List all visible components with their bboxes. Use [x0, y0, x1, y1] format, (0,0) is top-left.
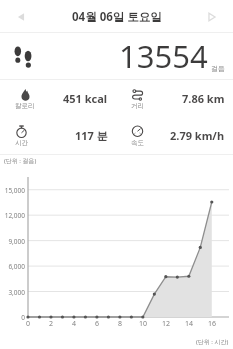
- staticText: 8: [114, 319, 126, 329]
- button[interactable]: 시간: [0, 117, 116, 154]
- button[interactable]: Previous day: [8, 4, 34, 30]
- staticText: 시간: [15, 139, 28, 147]
- staticText: 15,000: [0, 186, 25, 195]
- staticText: (단위 : 시간): [196, 338, 229, 346]
- staticText: 14: [183, 319, 195, 329]
- staticText: 13554: [119, 35, 208, 77]
- other: Steps: [13, 43, 39, 69]
- staticText: 04월 06일 토요일: [72, 9, 162, 25]
- staticText: 10: [137, 319, 149, 329]
- staticText: 451 kcal: [63, 91, 108, 106]
- staticText: 7.86 km: [182, 91, 225, 106]
- button[interactable]: 거리: [116, 80, 233, 117]
- staticText: 2: [45, 319, 57, 329]
- staticText: 속도: [131, 139, 144, 147]
- staticText: (단위 : 걸음): [4, 157, 37, 165]
- staticText: 16: [206, 319, 218, 329]
- staticText: 0: [0, 313, 25, 322]
- button[interactable]: Steps: [0, 33, 233, 79]
- staticText: 12,000: [0, 211, 25, 220]
- staticText: 칼로리: [15, 102, 35, 110]
- staticText: 걸음: [211, 64, 225, 73]
- button[interactable]: 속도: [116, 117, 233, 154]
- button[interactable]: 칼로리: [0, 80, 116, 117]
- button[interactable]: Next day: [199, 4, 225, 30]
- staticText: 0: [22, 319, 34, 329]
- staticText: 2.79 km/h: [170, 128, 225, 143]
- staticText: 3,000: [0, 288, 25, 297]
- staticText: 117 분: [75, 128, 108, 143]
- staticText: 12: [160, 319, 172, 329]
- staticText: 6,000: [0, 262, 25, 271]
- staticText: 6: [91, 319, 103, 329]
- staticText: 거리: [131, 102, 144, 110]
- staticText: 9,000: [0, 237, 25, 246]
- staticText: 4: [68, 319, 80, 329]
